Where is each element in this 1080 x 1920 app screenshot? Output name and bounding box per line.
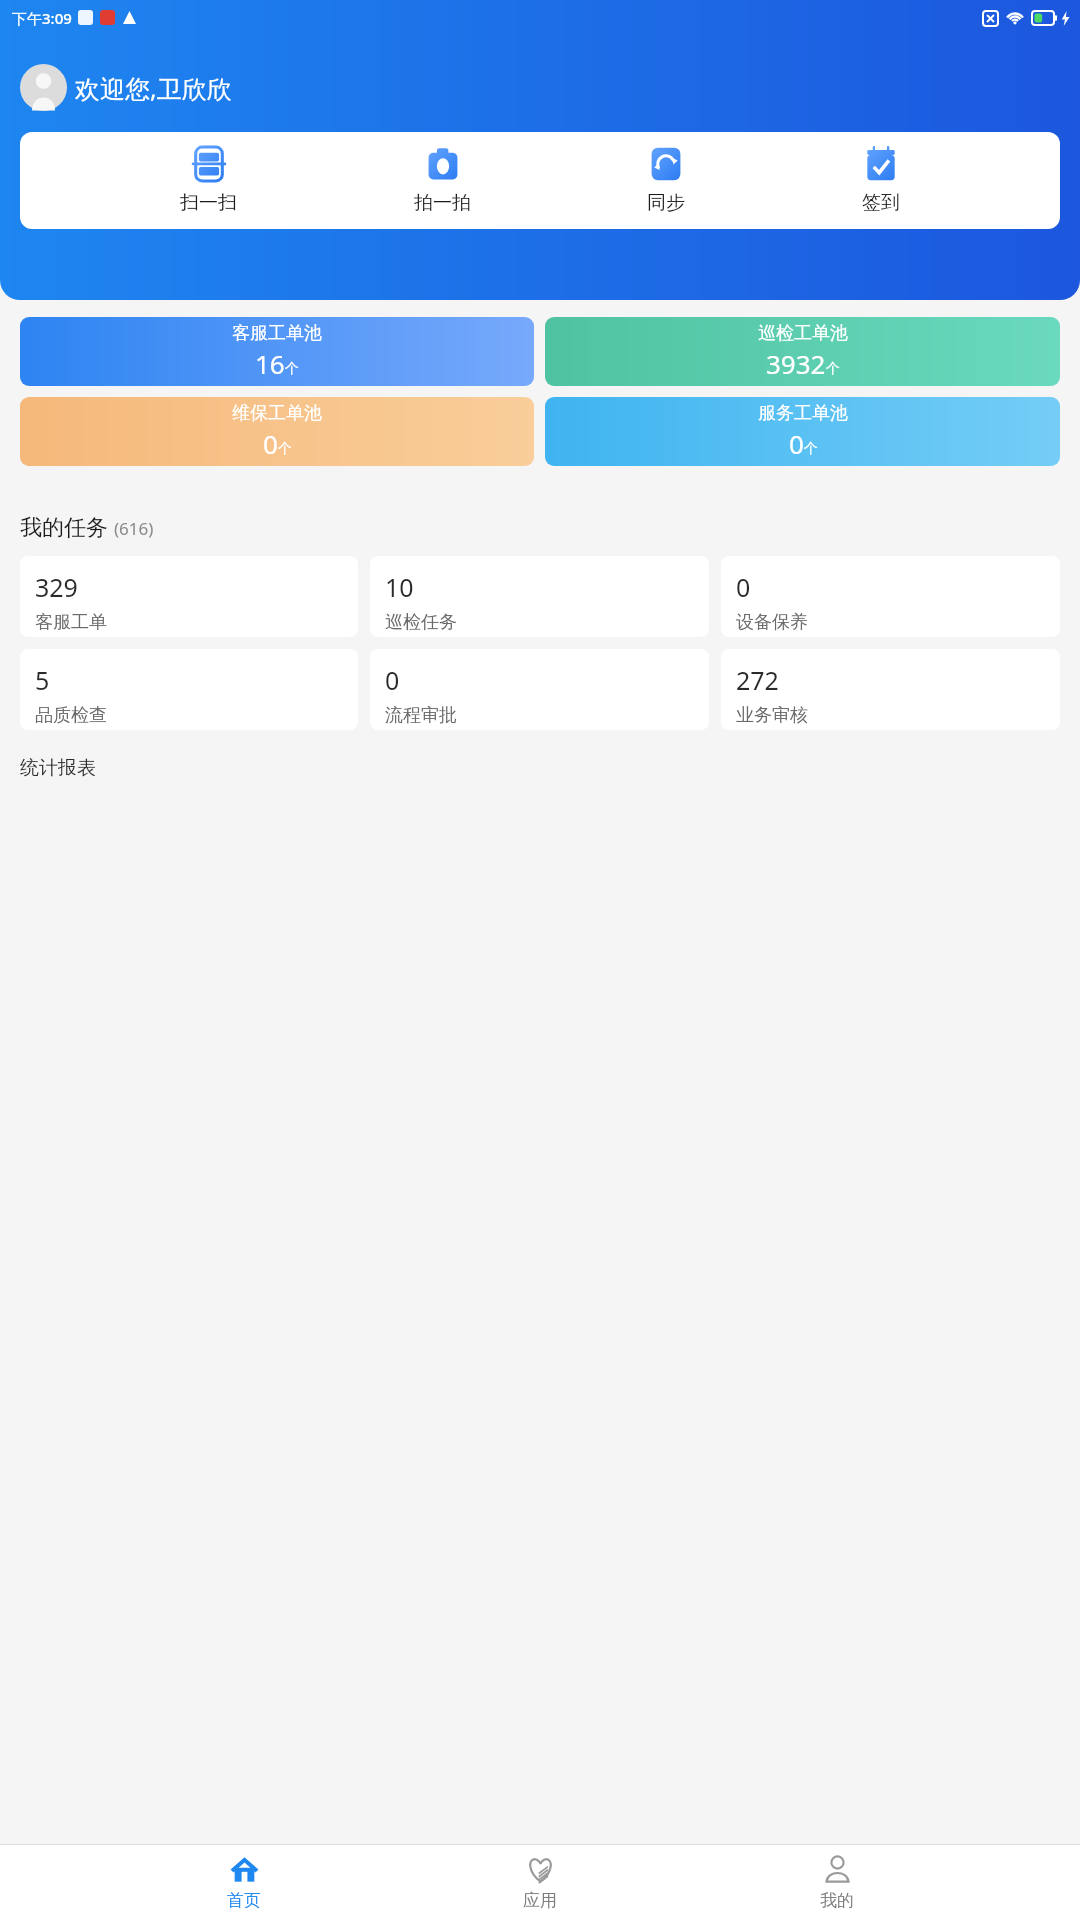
- button[interactable]: 拍一拍: [398, 140, 487, 221]
- button[interactable]: 10: [370, 556, 709, 637]
- staticText: 个: [285, 360, 299, 378]
- staticText: 10: [385, 570, 414, 604]
- staticText: 0: [789, 426, 804, 461]
- staticText: 业务审核: [736, 704, 808, 727]
- staticText: 巡检任务: [385, 611, 457, 634]
- staticText: 首页: [227, 1890, 261, 1911]
- button[interactable]: 维保工单池: [20, 397, 534, 466]
- staticText: 16: [255, 346, 285, 381]
- staticText: 3932: [766, 346, 826, 381]
- staticText: 扫一扫: [180, 191, 237, 215]
- button[interactable]: 客服工单池: [20, 317, 534, 386]
- staticText: 服务工单池: [758, 402, 848, 425]
- button[interactable]: 扫一扫: [164, 140, 253, 221]
- button[interactable]: 签到: [846, 140, 916, 221]
- button[interactable]: 0: [370, 649, 709, 730]
- button[interactable]: 巡检工单池: [545, 317, 1060, 386]
- staticText: 拍一拍: [414, 191, 471, 215]
- staticText: 设备保养: [736, 611, 808, 634]
- button[interactable]: 服务工单池: [545, 397, 1060, 466]
- staticText: 0: [385, 663, 400, 697]
- button[interactable]: 同步: [631, 140, 701, 221]
- button[interactable]: 首页: [191, 1850, 297, 1916]
- staticText: 应用: [523, 1890, 557, 1911]
- staticText: 欢迎您,卫欣欣: [75, 71, 232, 105]
- button[interactable]: 应用: [487, 1850, 593, 1916]
- staticText: 272: [736, 663, 779, 697]
- staticText: 签到: [862, 191, 900, 215]
- staticText: 巡检工单池: [758, 322, 848, 345]
- staticText: 0: [263, 426, 278, 461]
- staticText: 流程审批: [385, 704, 457, 727]
- button[interactable]: 5: [20, 649, 358, 730]
- staticText: 客服工单: [35, 611, 107, 634]
- staticText: 维保工单池: [232, 402, 322, 425]
- staticText: 5: [35, 663, 50, 697]
- staticText: 下午3:09: [12, 8, 72, 28]
- staticText: (616): [114, 517, 154, 540]
- staticText: 统计报表: [20, 756, 96, 780]
- staticText: 我的: [820, 1890, 854, 1911]
- staticText: 329: [35, 570, 78, 604]
- staticText: 个: [826, 360, 840, 378]
- staticText: 0: [736, 570, 751, 604]
- button[interactable]: 0: [721, 556, 1060, 637]
- button[interactable]: 我的: [784, 1850, 890, 1916]
- button[interactable]: 329: [20, 556, 358, 637]
- staticText: 同步: [647, 191, 685, 215]
- staticText: 个: [278, 440, 292, 458]
- staticText: 客服工单池: [232, 322, 322, 345]
- button[interactable]: 272: [721, 649, 1060, 730]
- staticText: 个: [804, 440, 818, 458]
- staticText: 品质检查: [35, 704, 107, 727]
- staticText: 我的任务: [20, 514, 108, 542]
